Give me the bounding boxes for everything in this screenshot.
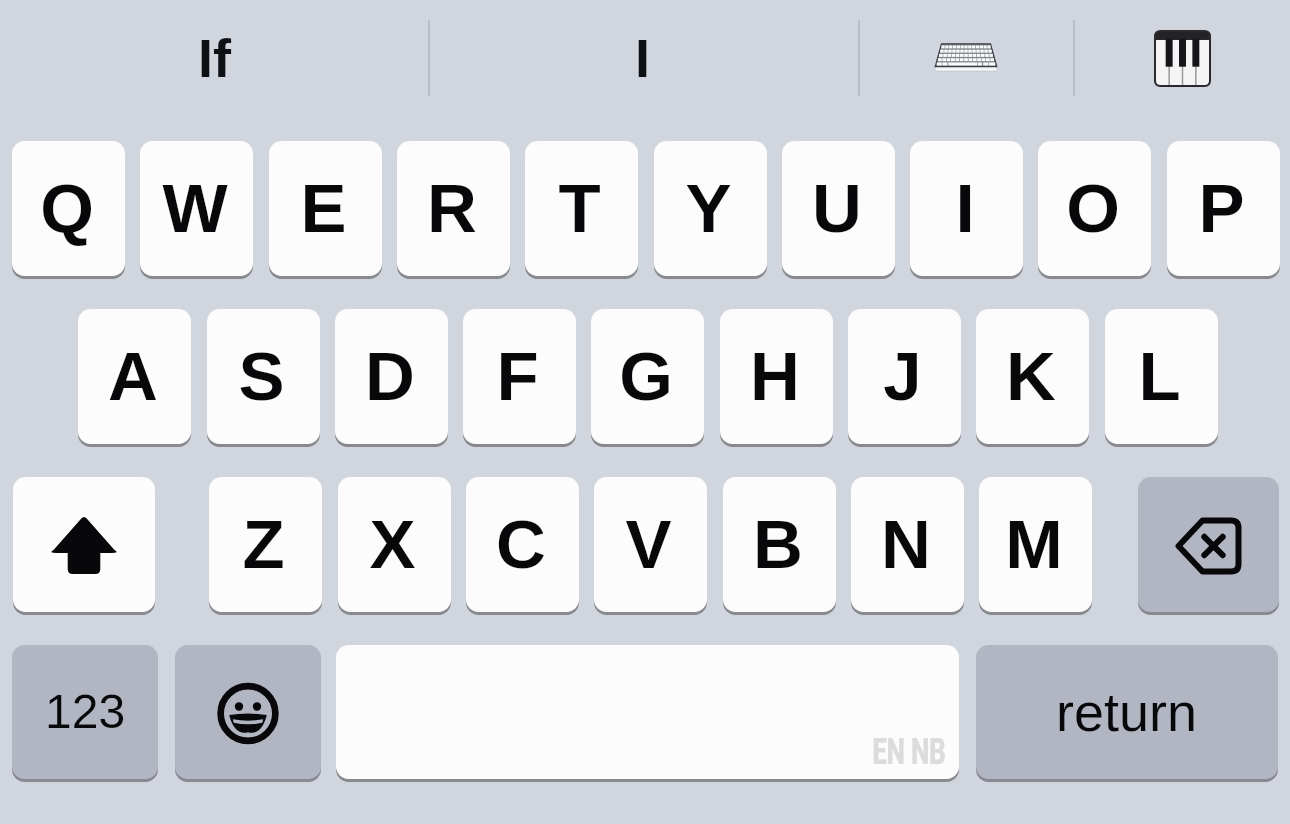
button[interactable]: Q — [12, 141, 125, 276]
staticText: J — [883, 338, 922, 415]
button[interactable]: K — [976, 309, 1089, 444]
staticText: P — [1198, 170, 1245, 247]
button[interactable]: J — [848, 309, 961, 444]
button[interactable]: I — [428, 0, 858, 116]
staticText: S — [238, 338, 285, 415]
staticText: C — [496, 506, 546, 583]
button[interactable]: F — [463, 309, 576, 444]
staticText: M — [1005, 506, 1063, 583]
button[interactable]: D — [335, 309, 448, 444]
button[interactable]: Keyboard emoji suggestion — [858, 0, 1073, 116]
button[interactable]: B — [723, 477, 836, 612]
staticText: O — [1066, 170, 1120, 247]
button[interactable]: C — [466, 477, 579, 612]
button[interactable]: return — [976, 645, 1278, 779]
staticText: D — [365, 338, 415, 415]
staticText: N — [881, 506, 931, 583]
staticText: E — [300, 170, 347, 247]
button[interactable]: X — [338, 477, 451, 612]
staticText: return — [1056, 682, 1198, 742]
staticText: V — [625, 506, 672, 583]
staticText: Z — [242, 506, 285, 583]
button[interactable]: If — [0, 0, 428, 116]
staticText: I — [955, 170, 975, 247]
staticText: R — [427, 170, 477, 247]
button[interactable]: S — [207, 309, 320, 444]
staticText: B — [753, 506, 803, 583]
staticText: A — [108, 338, 158, 415]
button[interactable]: Y — [654, 141, 767, 276]
staticText: I — [635, 28, 651, 88]
staticText: K — [1006, 338, 1056, 415]
staticText: X — [369, 506, 416, 583]
button[interactable]: space — [336, 645, 959, 779]
button[interactable]: M — [979, 477, 1092, 612]
staticText: W — [162, 170, 228, 247]
staticText: G — [619, 338, 673, 415]
button[interactable]: U — [782, 141, 895, 276]
button[interactable]: Backspace — [1138, 477, 1279, 612]
button[interactable]: I — [910, 141, 1023, 276]
staticText: If — [198, 28, 231, 88]
button[interactable]: Z — [209, 477, 322, 612]
staticText: EN NB — [872, 731, 946, 773]
staticText: L — [1138, 338, 1181, 415]
staticText: Q — [40, 170, 94, 247]
button[interactable]: G — [591, 309, 704, 444]
staticText: T — [558, 170, 601, 247]
button[interactable]: V — [594, 477, 707, 612]
button[interactable]: A — [78, 309, 191, 444]
button[interactable]: Piano emoji suggestion — [1073, 0, 1290, 116]
button[interactable]: T — [525, 141, 638, 276]
button[interactable]: L — [1105, 309, 1218, 444]
staticText: F — [496, 338, 539, 415]
button[interactable]: Numbers — [12, 645, 158, 779]
button[interactable]: N — [851, 477, 964, 612]
staticText: 123 — [45, 685, 126, 739]
button[interactable]: Shift — [13, 477, 155, 612]
button[interactable]: E — [269, 141, 382, 276]
button[interactable]: W — [140, 141, 253, 276]
staticText: H — [750, 338, 800, 415]
button[interactable]: O — [1038, 141, 1151, 276]
button[interactable]: R — [397, 141, 510, 276]
staticText: U — [812, 170, 862, 247]
staticText: Y — [685, 170, 732, 247]
button[interactable]: Emoji — [175, 645, 321, 779]
button[interactable]: H — [720, 309, 833, 444]
button[interactable]: P — [1167, 141, 1280, 276]
